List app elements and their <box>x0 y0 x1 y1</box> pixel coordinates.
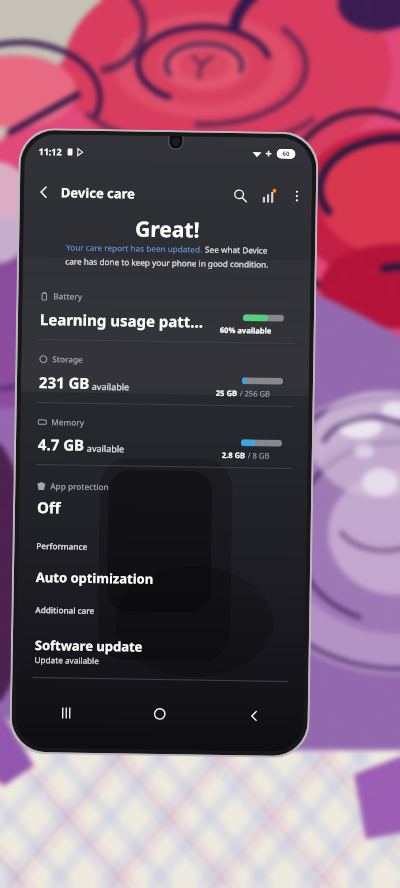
staticText: available <box>92 380 130 392</box>
staticText: Your care report has been updated. <box>66 241 203 255</box>
staticText: available <box>87 442 125 454</box>
staticText: Storage <box>52 353 83 365</box>
staticText: Update available <box>34 654 100 666</box>
staticText: Battery <box>53 290 82 302</box>
staticText: Off <box>37 497 61 517</box>
button[interactable]: More options <box>286 185 308 207</box>
staticText: Performance <box>36 540 87 552</box>
staticText: See what Device <box>203 244 268 256</box>
button[interactable]: Home <box>137 694 182 734</box>
staticText: 25 GB <box>216 388 238 398</box>
button[interactable]: Software update <box>16 632 305 672</box>
staticText: Device care <box>61 183 135 203</box>
button[interactable]: Usage statistics <box>257 183 281 208</box>
staticText: 4.7 GB <box>38 434 85 455</box>
button[interactable]: Auto optimization <box>18 564 306 594</box>
staticText: 11:12 <box>38 145 63 157</box>
button[interactable]: Battery <box>22 286 310 334</box>
staticText: Auto optimization <box>36 568 154 588</box>
staticText: / 256 GB <box>238 388 271 399</box>
button[interactable]: App protection <box>19 476 307 524</box>
staticText: Great! <box>23 213 311 246</box>
staticText: 60% available <box>220 325 272 336</box>
button[interactable]: Navigate up <box>32 180 56 204</box>
staticText: App protection <box>50 480 109 492</box>
button[interactable]: Back <box>231 695 276 736</box>
button[interactable]: Memory <box>20 412 308 460</box>
staticText: care has done to keep your phone in good… <box>23 255 311 270</box>
button[interactable]: Recent apps <box>43 692 88 733</box>
button[interactable]: Search <box>228 183 252 207</box>
staticText: 60 <box>282 150 290 158</box>
staticText: Memory <box>51 416 84 428</box>
staticText: / 8 GB <box>246 450 270 461</box>
staticText: Software update <box>35 636 143 656</box>
staticText: Additional care <box>35 604 94 616</box>
staticText: 231 GB <box>39 372 90 393</box>
staticText: 2.8 GB <box>222 450 246 460</box>
button[interactable]: Storage <box>21 349 309 397</box>
staticText: Learning usage patt... <box>40 309 204 332</box>
